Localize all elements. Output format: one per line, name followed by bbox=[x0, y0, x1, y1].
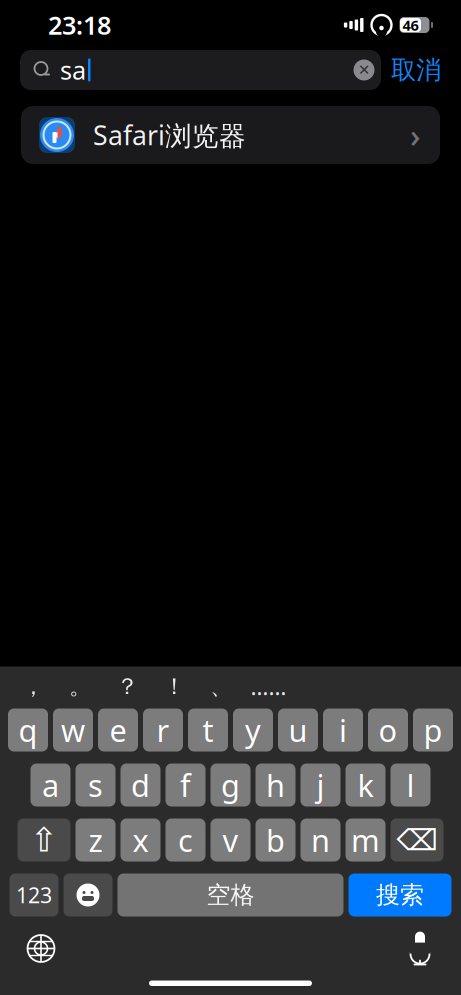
staticText: …… bbox=[250, 671, 286, 701]
staticText: ， bbox=[22, 673, 45, 700]
staticText: 搜索 bbox=[376, 880, 424, 910]
button[interactable]: a bbox=[30, 763, 70, 806]
staticText: a bbox=[42, 765, 59, 805]
button[interactable]: Emoji bbox=[63, 873, 112, 916]
staticText: ✕ bbox=[358, 62, 370, 78]
staticText: › bbox=[410, 114, 420, 156]
button[interactable]: s bbox=[75, 763, 115, 806]
staticText: x bbox=[132, 820, 148, 860]
staticText: c bbox=[178, 820, 193, 860]
staticText: j bbox=[316, 765, 324, 805]
staticText: m bbox=[351, 820, 380, 860]
button[interactable]: ， bbox=[10, 667, 57, 705]
staticText: e bbox=[109, 710, 126, 750]
staticText: ✦ bbox=[52, 128, 62, 142]
staticText: h bbox=[266, 765, 285, 805]
button[interactable]: 取消 bbox=[381, 50, 451, 90]
button[interactable]: Switch keyboard bbox=[14, 926, 68, 970]
button[interactable]: t bbox=[188, 708, 228, 751]
staticText: ？ bbox=[116, 673, 139, 700]
button[interactable]: k bbox=[345, 763, 385, 806]
staticText: z bbox=[88, 820, 102, 860]
staticText: 123 bbox=[16, 881, 52, 909]
staticText: 取消 bbox=[391, 54, 441, 85]
button[interactable]: Delete bbox=[390, 818, 443, 861]
button[interactable]: w bbox=[53, 708, 93, 751]
button[interactable]: r bbox=[143, 708, 183, 751]
staticText: 23:18 bbox=[48, 8, 111, 42]
button[interactable]: i bbox=[323, 708, 363, 751]
staticText: s bbox=[88, 765, 103, 805]
staticText: 空格 bbox=[206, 880, 254, 910]
button[interactable]: v bbox=[210, 818, 250, 861]
staticText: o bbox=[378, 710, 397, 750]
staticText: ！ bbox=[163, 673, 186, 700]
staticText: t bbox=[202, 710, 213, 750]
button[interactable]: p bbox=[413, 708, 453, 751]
staticText: b bbox=[266, 820, 285, 860]
button[interactable]: o bbox=[368, 708, 408, 751]
button[interactable]: h bbox=[255, 763, 295, 806]
staticText: i bbox=[339, 710, 347, 750]
staticText: 46 bbox=[402, 15, 418, 35]
button[interactable]: n bbox=[300, 818, 340, 861]
button[interactable]: g bbox=[210, 763, 250, 806]
staticText: 。 bbox=[69, 673, 92, 700]
staticText: 、 bbox=[210, 673, 233, 700]
staticText: l bbox=[406, 765, 414, 805]
staticText: d bbox=[131, 765, 150, 805]
staticText: Safari浏览器 bbox=[93, 117, 246, 153]
staticText: n bbox=[311, 820, 330, 860]
staticText: v bbox=[222, 820, 238, 860]
button[interactable]: m bbox=[345, 818, 385, 861]
staticText: g bbox=[221, 765, 240, 805]
button[interactable]: ✦ bbox=[21, 106, 440, 164]
button[interactable]: Dictation bbox=[393, 926, 447, 970]
staticText: ⇧ bbox=[30, 821, 58, 859]
button[interactable]: 、 bbox=[198, 667, 245, 705]
staticText: ⌫ bbox=[396, 823, 437, 857]
button[interactable]: x bbox=[120, 818, 160, 861]
button[interactable]: d bbox=[120, 763, 160, 806]
button[interactable]: 。 bbox=[57, 667, 104, 705]
button[interactable]: b bbox=[255, 818, 295, 861]
button[interactable]: …… bbox=[245, 667, 292, 705]
button[interactable]: j bbox=[300, 763, 340, 806]
staticText: r bbox=[156, 710, 169, 750]
button[interactable]: Shift bbox=[17, 818, 70, 861]
button[interactable]: ！ bbox=[151, 667, 198, 705]
staticText: sa bbox=[60, 53, 86, 87]
button[interactable]: q bbox=[8, 708, 48, 751]
button[interactable]: 空格 bbox=[117, 873, 343, 916]
button[interactable]: Clear text bbox=[347, 50, 381, 90]
button[interactable]: l bbox=[390, 763, 430, 806]
staticText: f bbox=[180, 765, 191, 805]
staticText: p bbox=[423, 710, 442, 750]
button[interactable]: f bbox=[165, 763, 205, 806]
button[interactable]: u bbox=[278, 708, 318, 751]
button[interactable]: c bbox=[165, 818, 205, 861]
button[interactable]: e bbox=[98, 708, 138, 751]
staticText: w bbox=[61, 710, 85, 750]
button[interactable]: y bbox=[233, 708, 273, 751]
staticText: y bbox=[245, 710, 261, 750]
staticText: q bbox=[18, 710, 37, 750]
staticText: u bbox=[288, 710, 307, 750]
staticText: k bbox=[357, 765, 373, 805]
button[interactable]: ？ bbox=[104, 667, 151, 705]
button[interactable]: 123 bbox=[9, 873, 58, 916]
button[interactable]: z bbox=[75, 818, 115, 861]
button[interactable]: 搜索 bbox=[348, 873, 451, 916]
